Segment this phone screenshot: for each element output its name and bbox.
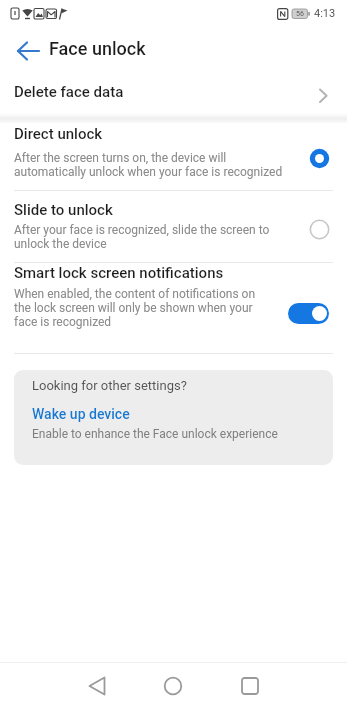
button[interactable] — [230, 666, 270, 706]
staticText: After the screen turns on, the device wi… — [14, 151, 283, 179]
staticText: Direct unlock — [14, 125, 103, 143]
button[interactable]: Delete face data — [0, 74, 347, 116]
staticText: Looking for other settings? — [32, 378, 187, 393]
staticText: Face unlock — [49, 38, 146, 59]
staticText: Delete face data — [14, 83, 124, 101]
button[interactable]: Smart lock screen notifications — [0, 263, 347, 353]
button[interactable] — [77, 666, 117, 706]
staticText: 56 — [296, 10, 304, 18]
staticText: 4:13 — [314, 7, 336, 20]
button[interactable]: Slide to unlock — [0, 191, 347, 262]
staticText: Slide to unlock — [14, 201, 113, 219]
button[interactable]: Wake up device — [32, 406, 130, 430]
button[interactable]: Direct unlock — [0, 122, 347, 190]
button[interactable] — [153, 666, 193, 706]
button[interactable] — [8, 38, 48, 64]
button[interactable] — [288, 303, 329, 324]
staticText: Smart lock screen notifications — [14, 264, 224, 282]
staticText: Wake up device — [32, 406, 130, 422]
staticText: When enabled, the content of notificatio… — [14, 287, 256, 329]
staticText: After your face is recognized, slide the… — [14, 223, 270, 251]
staticText: Enable to enhance the Face unlock experi… — [32, 427, 278, 441]
